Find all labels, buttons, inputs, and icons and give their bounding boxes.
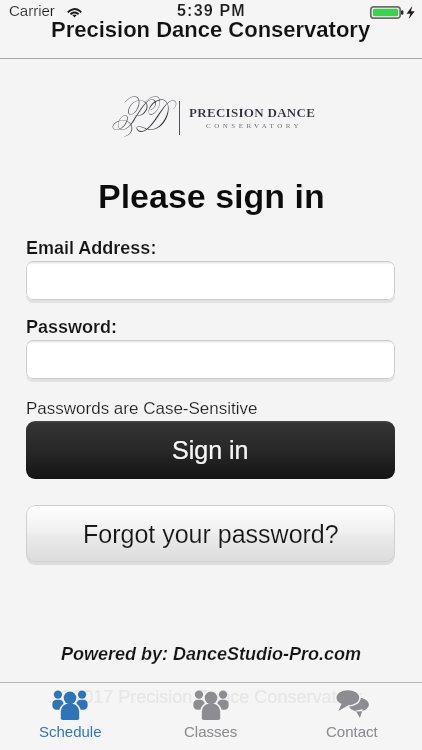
staticText: Please sign in (98, 177, 325, 215)
staticText: 5:39 PM (177, 2, 246, 20)
staticText: Classes (184, 723, 238, 740)
staticText: Password: (26, 317, 118, 337)
staticText: PD (19, 92, 259, 147)
staticText: ©2017 Precision Dance Conservatory (60, 687, 362, 707)
staticText: Email Address: (26, 238, 157, 258)
staticText: Contact (326, 723, 378, 740)
button[interactable]: Contact (281, 683, 422, 750)
button[interactable]: Classes (140, 683, 281, 750)
staticText: Precision Dance Conservatory (51, 17, 371, 42)
staticText: Powered by: DanceStudio-Pro.com (61, 644, 362, 664)
staticText: Carrier (9, 2, 55, 19)
button[interactable]: Forgot your password? (26, 505, 395, 562)
staticText: Sign in (172, 436, 249, 464)
button[interactable]: Schedule (0, 683, 140, 750)
staticText: PRECISION DANCE (189, 105, 316, 119)
staticText: Forgot your password? (83, 520, 339, 548)
staticText: CONSERVATORY (206, 122, 303, 130)
button[interactable] (26, 261, 395, 300)
button[interactable]: Sign in (26, 421, 395, 479)
staticText: Passwords are Case-Sensitive (26, 399, 258, 418)
button[interactable] (26, 340, 395, 379)
staticText: Schedule (39, 723, 102, 740)
